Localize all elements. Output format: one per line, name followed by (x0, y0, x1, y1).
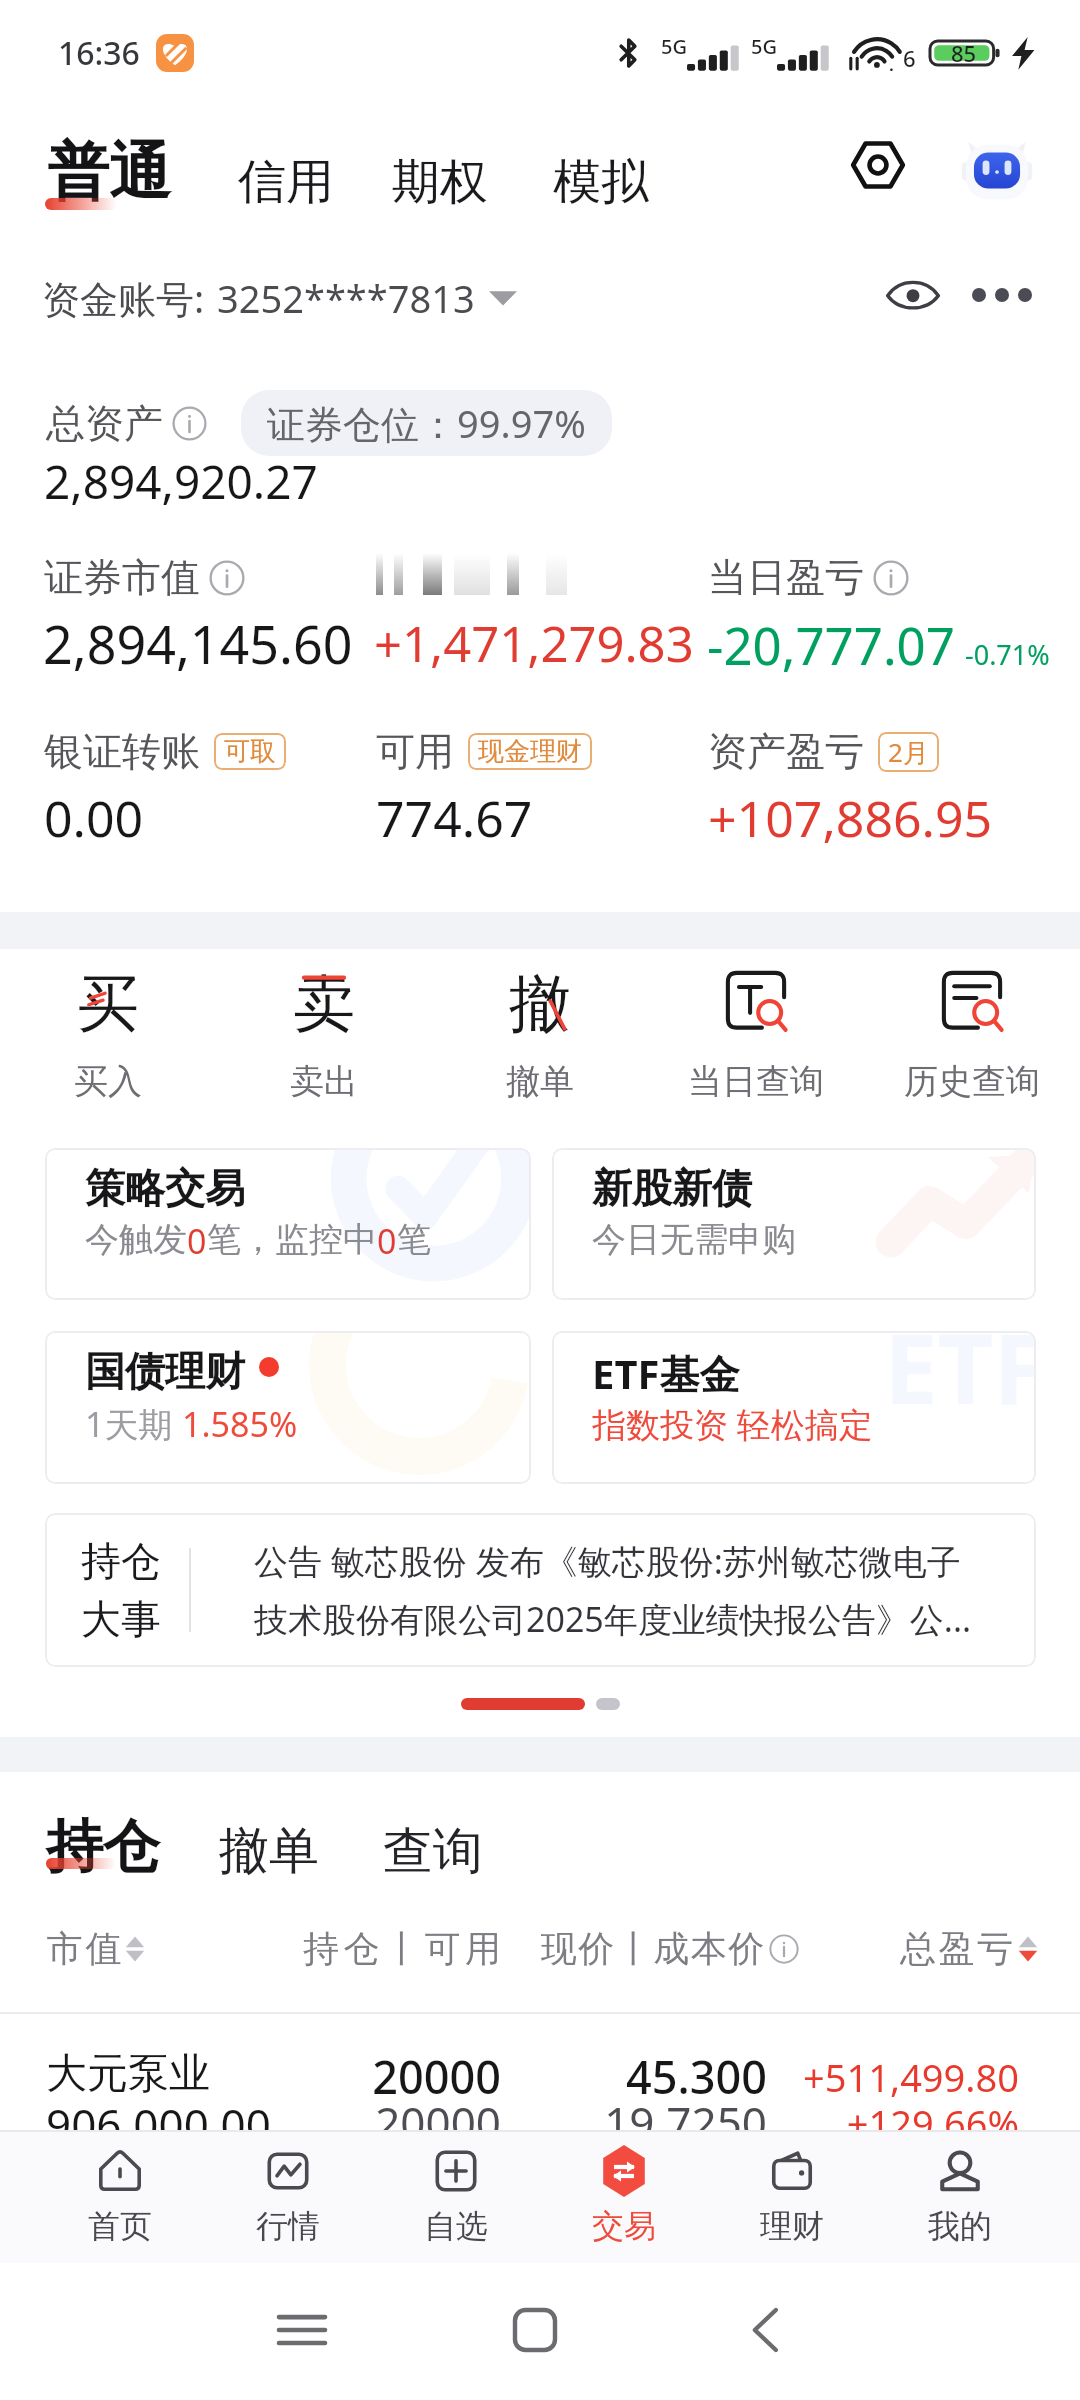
staticText: 笔 (397, 1218, 431, 1261)
button[interactable]: ETF (552, 1331, 1036, 1484)
button[interactable]: 撤单 (217, 1818, 321, 1885)
staticText: ETF基金 (592, 1346, 740, 1401)
staticText: 银证转账 (44, 727, 200, 776)
staticText: 总盈亏 (900, 1926, 1016, 1971)
staticText: 交易 (592, 2206, 656, 2246)
staticText: 当日查询 (688, 1060, 824, 1103)
staticText: 现金理财 (478, 735, 582, 768)
staticText: 理财 (760, 2206, 824, 2246)
button[interactable]: 行情 (204, 2132, 372, 2263)
button[interactable]: 自选 (372, 2132, 540, 2263)
staticText: 买 (77, 965, 139, 1043)
staticText: 公告 敏芯股份 发布《敏芯股份:苏州敏芯微电子 (254, 1538, 961, 1584)
button[interactable]: 买 (0, 960, 216, 1110)
staticText: 我的 (928, 2206, 992, 2246)
staticText: 撤单 (506, 1060, 574, 1103)
staticText: 5G (751, 33, 777, 60)
staticText: 今触发 (85, 1218, 187, 1261)
staticText: 906,000.00 (46, 2094, 271, 2154)
staticText: 1天期 (85, 1401, 182, 1447)
staticText: 市值 (45, 1926, 123, 1971)
staticText: 当日盈亏 (708, 553, 864, 602)
button[interactable]: 信用 (236, 150, 336, 214)
staticText: 证券仓位：99.97% (267, 397, 586, 449)
staticText: 2,894,145.60 (43, 608, 353, 679)
staticText: 卖 (293, 965, 355, 1043)
button[interactable]: 查询 (381, 1818, 485, 1885)
button[interactable]: 资金账号: (40, 268, 519, 328)
staticText: 0 (187, 1218, 207, 1264)
staticText: 2,894,920.27 (44, 450, 318, 513)
staticText: 20000 (300, 2046, 501, 2107)
staticText: 5G (661, 33, 687, 60)
staticText: 资产盈亏 (708, 727, 864, 776)
staticText: 新股新债 (592, 1163, 752, 1213)
staticText: 19.7250 (540, 2092, 767, 2152)
staticText: 历史查询 (904, 1060, 1040, 1103)
staticText: ETF (884, 1331, 1036, 1432)
staticText: 国债理财 (85, 1346, 245, 1396)
button[interactable]: 策略交易 (45, 1148, 531, 1300)
button[interactable]: 持仓 (45, 1513, 1036, 1667)
button[interactable]: Recent apps (262, 2290, 342, 2370)
staticText: 16:36 (58, 31, 140, 75)
button[interactable]: 模拟 (551, 150, 651, 214)
staticText: +107,886.95 (708, 784, 993, 852)
button[interactable]: Settings (848, 135, 908, 195)
staticText: 自选 (424, 2206, 488, 2246)
button[interactable]: 普通 (42, 137, 176, 227)
staticText: 普通 (47, 133, 171, 211)
button[interactable]: 历史查询 (864, 960, 1080, 1110)
staticText: +1,471,279.83 (374, 610, 694, 677)
button[interactable]: Back (725, 2290, 805, 2370)
button[interactable]: 当日查询 (648, 960, 864, 1110)
button[interactable]: 卖 (216, 960, 432, 1110)
button[interactable]: 首页 (36, 2132, 204, 2263)
staticText: 买入 (74, 1060, 142, 1103)
button[interactable]: 大元泵业 (0, 2020, 1080, 2180)
button[interactable]: More options (969, 262, 1035, 328)
staticText: 今日无需申购 (592, 1218, 796, 1261)
staticText: +129.66% (780, 2097, 1019, 2149)
staticText: 卖出 (290, 1060, 358, 1103)
staticText: 撤 (509, 965, 571, 1043)
button[interactable]: 我的 (876, 2132, 1044, 2263)
staticText: 现价丨成本价 (540, 1926, 765, 1971)
staticText: 总资产 (46, 399, 163, 448)
button[interactable]: 国债理财 (45, 1331, 531, 1484)
staticText: 20000 (300, 2092, 501, 2152)
button[interactable]: 交易 (540, 2132, 708, 2263)
staticText: 6 (903, 43, 916, 73)
button[interactable]: 可取 (214, 733, 286, 770)
staticText: 774.67 (376, 784, 533, 852)
button[interactable]: AI assistant (961, 136, 1033, 208)
button[interactable]: Toggle balance visibility (880, 262, 946, 328)
staticText: 首页 (88, 2206, 152, 2246)
staticText: -20,777.07 (707, 610, 955, 679)
staticText: 0 (377, 1218, 397, 1264)
staticText: 指数投资 轻松搞定 (592, 1401, 873, 1447)
button[interactable]: 现金理财 (468, 733, 592, 770)
staticText: 笔，监控中 (207, 1218, 377, 1261)
button[interactable]: 2月 (878, 732, 939, 772)
staticText: 技术股份有限公司2025年度业绩快报公告》公... (254, 1596, 972, 1642)
staticText: +511,499.80 (780, 2051, 1019, 2103)
staticText: 85 (951, 38, 977, 68)
button[interactable]: 新股新债 (552, 1148, 1036, 1300)
staticText: 可用 (376, 727, 454, 776)
staticText: 证券市值 (44, 553, 200, 602)
button[interactable]: Home (495, 2290, 575, 2370)
button[interactable]: 期权 (390, 150, 490, 214)
button[interactable]: 理财 (708, 2132, 876, 2263)
staticText: 可取 (224, 735, 276, 768)
staticText: 0.00 (44, 784, 144, 852)
button[interactable]: 持仓 (42, 1805, 164, 1888)
staticText: 持仓 (81, 1536, 161, 1586)
button[interactable]: 证券仓位：99.97% (241, 390, 612, 456)
staticText: 资金账号: (42, 272, 205, 324)
staticText: 持仓 (46, 1811, 160, 1883)
staticText: 大元泵业 (46, 2048, 210, 2100)
staticText: 2月 (888, 734, 929, 770)
staticText: 行情 (256, 2206, 320, 2246)
button[interactable]: 撤 (432, 960, 648, 1110)
